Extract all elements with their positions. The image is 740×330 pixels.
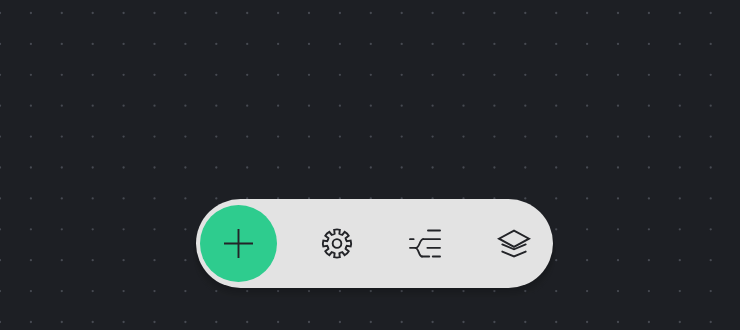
button[interactable]: Layers	[485, 199, 543, 288]
button[interactable]: Add	[200, 205, 277, 282]
button[interactable]: Settings	[308, 199, 366, 288]
button[interactable]: Adjust	[396, 199, 454, 288]
